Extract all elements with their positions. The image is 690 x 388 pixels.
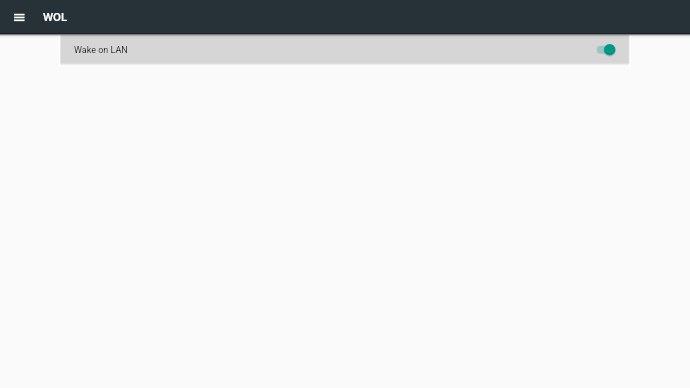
button[interactable]: Wake on LAN, on <box>591 41 615 59</box>
button[interactable]: Open navigation drawer <box>6 4 32 30</box>
staticText: WOL <box>43 10 68 23</box>
staticText: Wake on LAN <box>74 45 128 56</box>
button[interactable]: Wake on LAN <box>61 36 629 63</box>
